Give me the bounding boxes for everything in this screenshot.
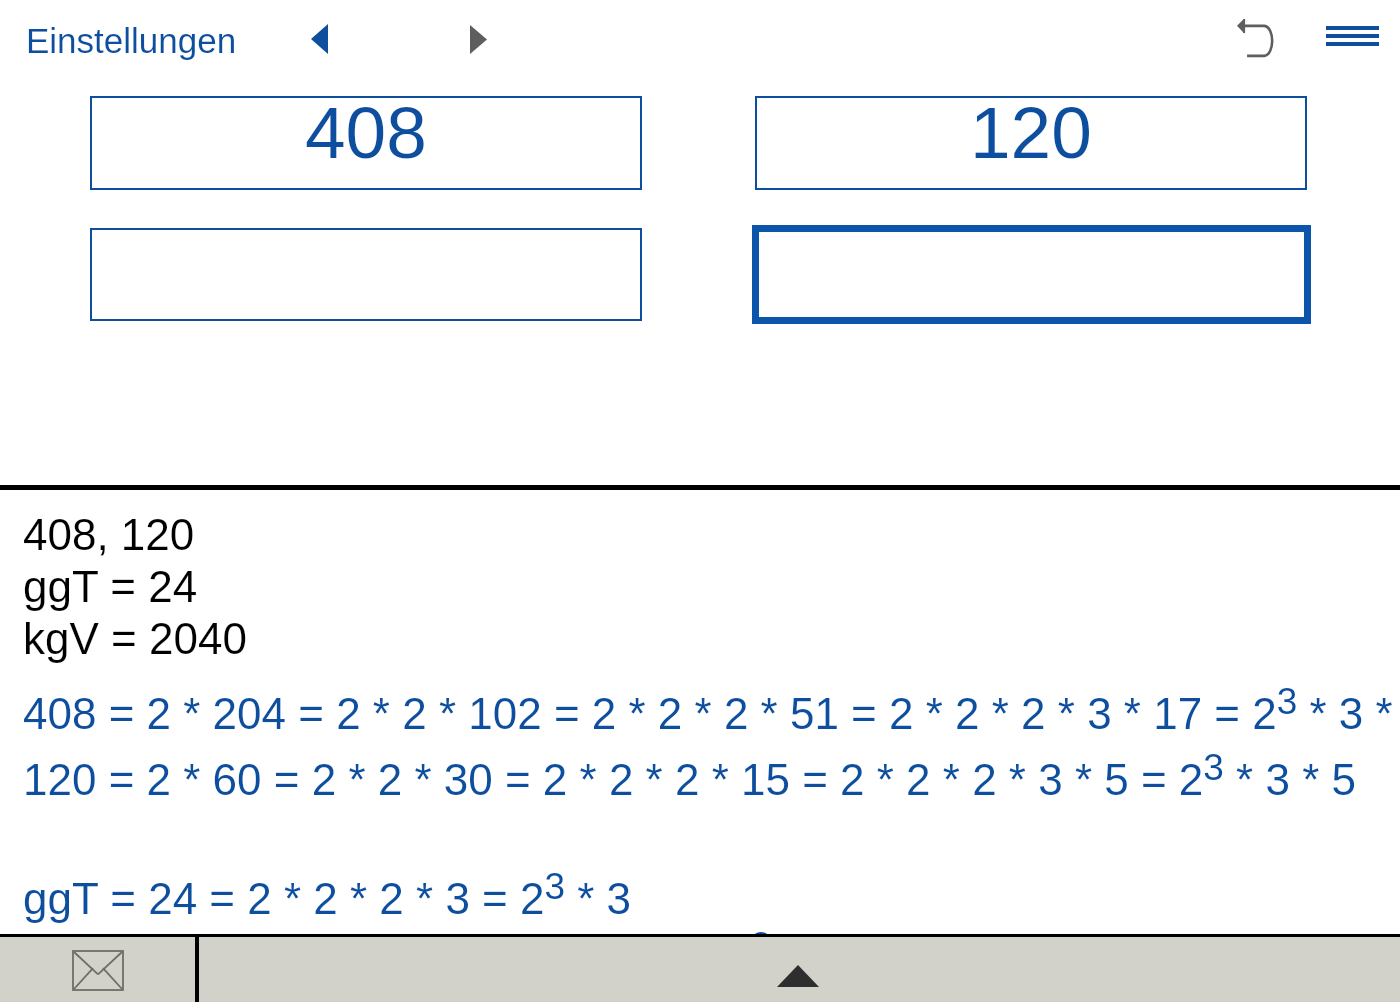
staticText: kgV = 2040 = 2 * 2 * 2 * 3 * 5 * 17 = 23…	[23, 925, 1400, 982]
staticText: kgV = 2040	[23, 614, 247, 663]
button[interactable]: Vierte Zahl	[752, 225, 1311, 324]
staticText: 408	[305, 92, 427, 174]
button[interactable]: Dritte Zahl	[90, 228, 642, 321]
staticText: 408 = 2 * 204 = 2 * 2 * 102 = 2 * 2 * 2 …	[23, 681, 1400, 738]
staticText: 120 = 2 * 60 = 2 * 2 * 30 = 2 * 2 * 2 * …	[23, 747, 1400, 804]
staticText: ggT = 24 = 2 * 2 * 2 * 3 = 23 * 3	[23, 866, 1400, 923]
button[interactable]: Einstellungen	[19, 16, 237, 64]
staticText: ggT = 24	[23, 562, 198, 611]
button[interactable]: Nachricht senden	[0, 937, 195, 1002]
button[interactable]: Zurück	[296, 14, 342, 64]
button[interactable]: 120	[755, 96, 1307, 190]
button[interactable]: 408	[90, 96, 642, 190]
button[interactable]: Nach oben	[199, 937, 1400, 1002]
button[interactable]: Rückgängig	[1230, 12, 1280, 64]
staticText: 408, 120	[23, 510, 195, 559]
staticText: Einstellungen	[26, 21, 237, 60]
button[interactable]: Weiter	[455, 14, 501, 64]
button[interactable]: Menü	[1316, 12, 1388, 60]
staticText: 120	[970, 92, 1092, 174]
